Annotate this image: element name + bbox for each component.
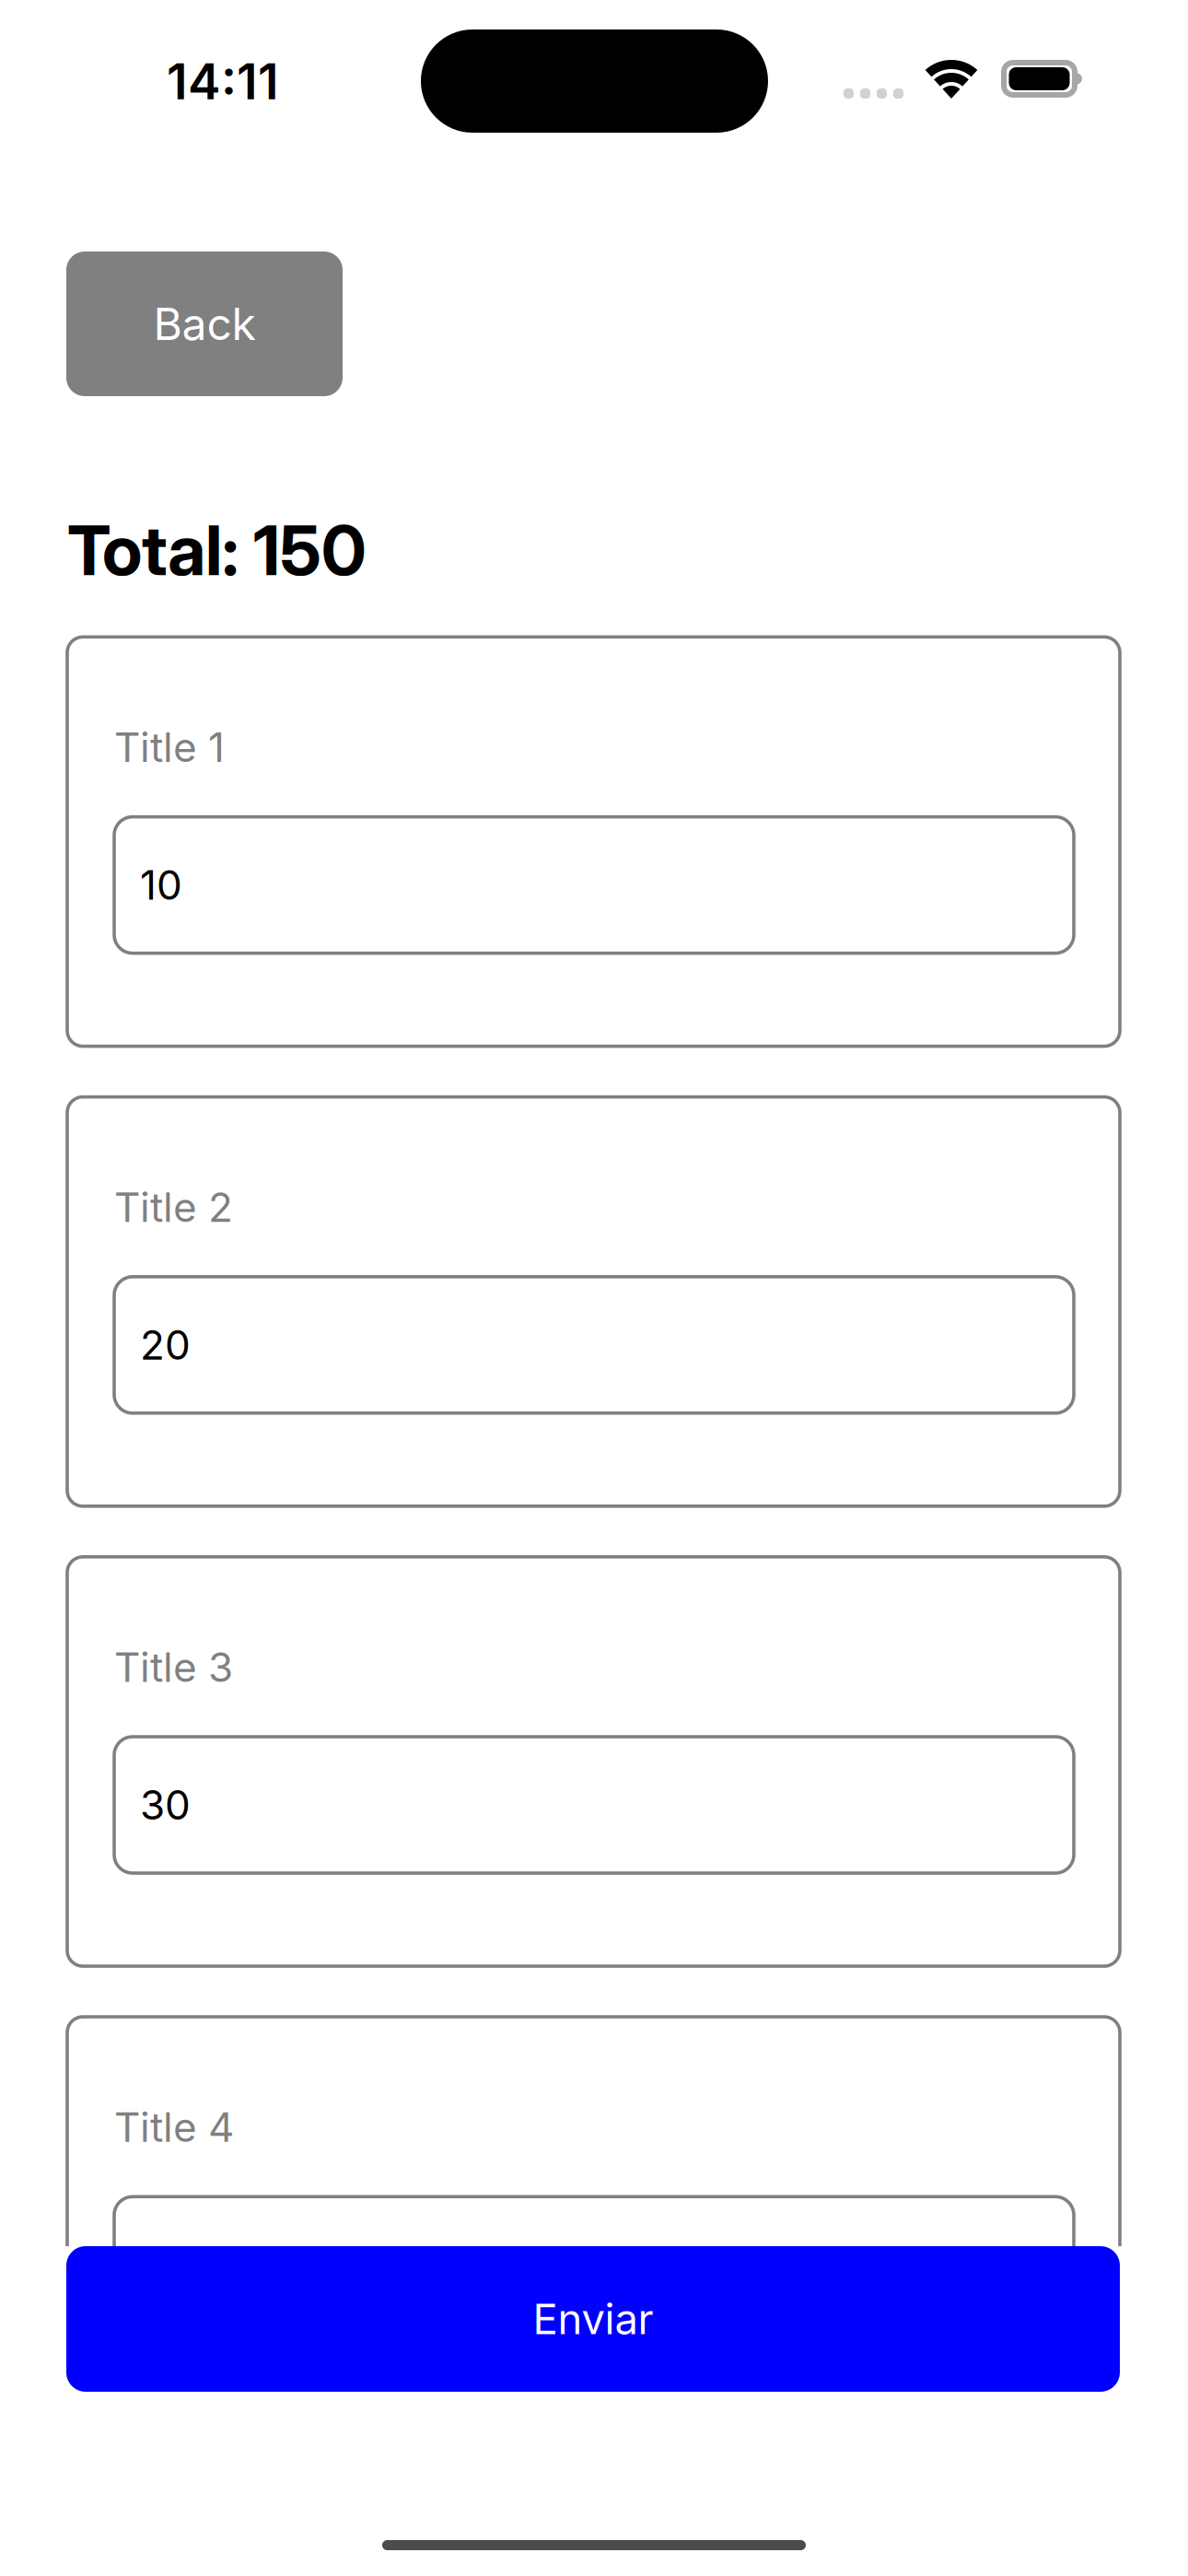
staticText: Back — [153, 297, 256, 351]
staticText: 40 — [140, 2240, 192, 2289]
staticText: 30 — [140, 1780, 191, 1829]
button[interactable]: Title 1 value 10 — [114, 817, 1074, 953]
staticText: 20 — [140, 1320, 191, 1369]
staticText: 10 — [140, 861, 182, 910]
button[interactable]: Title 4 value 40 — [114, 2197, 1074, 2333]
staticText: Title 4 — [114, 2103, 234, 2152]
button[interactable]: Back — [66, 252, 343, 396]
button[interactable]: Enviar — [66, 2246, 1120, 2392]
staticText: Total: 150 — [67, 509, 367, 592]
staticText: 14:11 — [167, 52, 279, 111]
staticText: Enviar — [533, 2294, 653, 2344]
staticText: Title 3 — [114, 1643, 233, 1692]
button[interactable]: Title 2 value 20 — [114, 1277, 1074, 1413]
button[interactable]: Title 3 value 30 — [114, 1737, 1074, 1873]
staticText: Title 2 — [114, 1183, 233, 1232]
staticText: Title 1 — [114, 723, 225, 772]
